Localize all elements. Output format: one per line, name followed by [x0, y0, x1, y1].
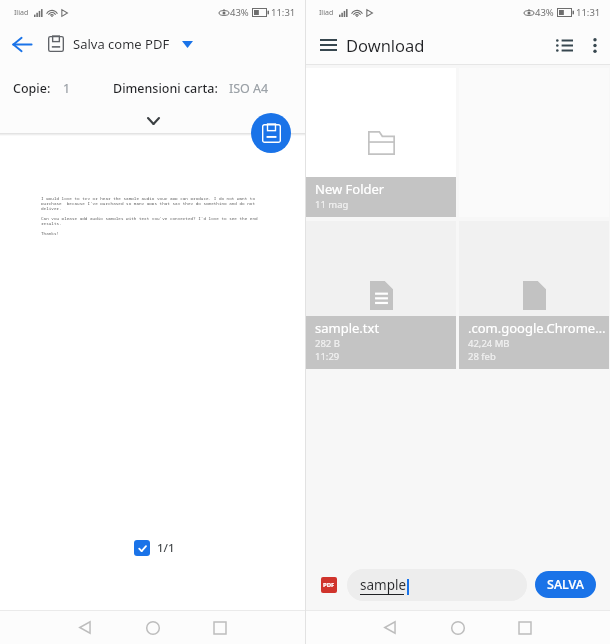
staticText: 28 feb [468, 350, 496, 363]
button[interactable]: Salva come PDF [48, 35, 193, 53]
button[interactable]: Menu [305, 25, 346, 64]
staticText: Copie: [13, 80, 51, 97]
staticText: 43% [535, 6, 554, 19]
staticText: Dimensioni carta: [113, 80, 218, 97]
staticText: Iliad [14, 8, 29, 18]
staticText: ISO A4 [229, 80, 269, 97]
staticText: .com.google.Chrome… [468, 319, 606, 337]
button[interactable]: .com.google.Chrome… [459, 221, 609, 369]
staticText: deliver. [41, 205, 62, 210]
button[interactable]: New Folder [306, 68, 456, 217]
button[interactable]: Home [135, 611, 171, 644]
staticText: Salva come PDF [73, 35, 170, 53]
staticText: 282 B [315, 337, 340, 350]
staticText: results. [41, 220, 62, 225]
staticText: 11 mag [315, 198, 349, 211]
staticText: New Folder [315, 180, 385, 198]
button[interactable]: Indietro [372, 611, 408, 644]
staticText: 42,24 MB [468, 337, 510, 350]
button[interactable]: SALVA [535, 571, 596, 598]
button[interactable]: Home [440, 611, 476, 644]
staticText: 1 [63, 80, 71, 97]
staticText: 11:31 [271, 6, 296, 19]
staticText: PDF [323, 581, 335, 589]
button[interactable]: Pagina selezionata [134, 540, 150, 556]
button[interactable]: App recenti [507, 611, 543, 644]
button[interactable]: sample.txt [306, 221, 456, 369]
staticText: I would love to try or hear the sample a… [41, 195, 255, 200]
staticText: 11:31 [576, 6, 601, 19]
staticText: Iliad [319, 8, 334, 18]
button[interactable]: Salva [251, 113, 291, 153]
staticText: 43% [230, 6, 249, 19]
staticText: 11:29 [315, 350, 340, 363]
staticText: purchase, because I've purchased so many… [41, 200, 255, 205]
staticText: sample.txt [315, 319, 380, 337]
button[interactable]: Indietro [67, 611, 103, 644]
button[interactable]: Altre opzioni [580, 30, 610, 60]
staticText: sample [360, 576, 407, 594]
staticText: SALVA [547, 576, 584, 593]
staticText: Thanks! [41, 230, 60, 235]
button[interactable]: Espandi opzioni [136, 104, 170, 138]
staticText: Download [346, 34, 425, 56]
button[interactable]: Vista elenco [548, 27, 580, 63]
button[interactable]: sample [347, 569, 527, 601]
button[interactable]: Indietro [0, 25, 44, 63]
staticText: Can you please add audio samples with te… [41, 215, 258, 220]
button[interactable]: App recenti [202, 611, 238, 644]
staticText: 1/1 [157, 540, 175, 556]
